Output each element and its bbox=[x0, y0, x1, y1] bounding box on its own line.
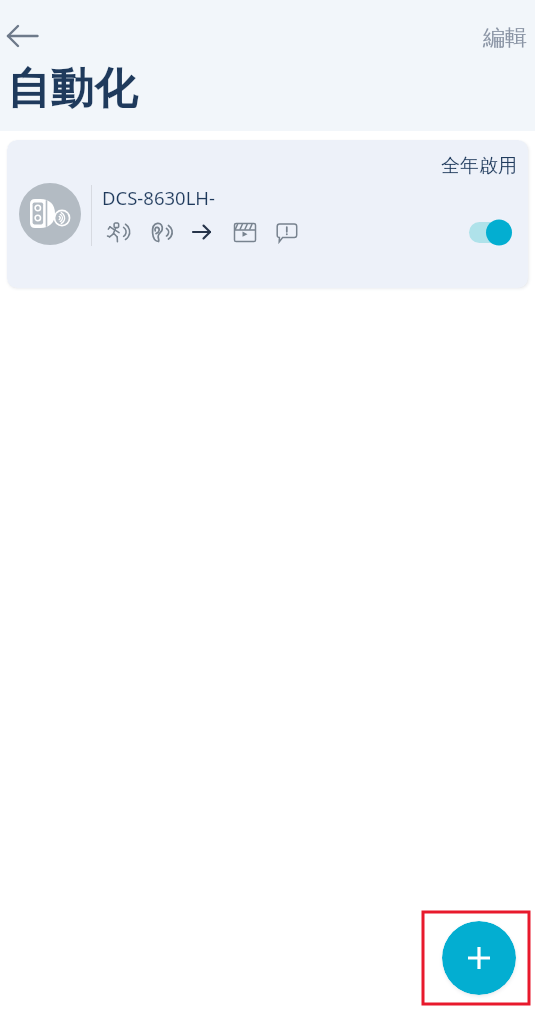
button[interactable]: Toggle automation bbox=[467, 220, 513, 248]
button[interactable]: 全年啟用 bbox=[7, 140, 528, 288]
button[interactable]: 編輯 bbox=[477, 21, 533, 55]
button[interactable]: Back bbox=[2, 16, 44, 58]
button[interactable]: Add automation bbox=[442, 921, 516, 995]
staticText: DCS-8630LH- bbox=[102, 185, 215, 210]
staticText: 編輯 bbox=[483, 24, 527, 52]
staticText: 全年啟用 bbox=[441, 154, 517, 178]
staticText: 自動化 bbox=[7, 62, 138, 116]
